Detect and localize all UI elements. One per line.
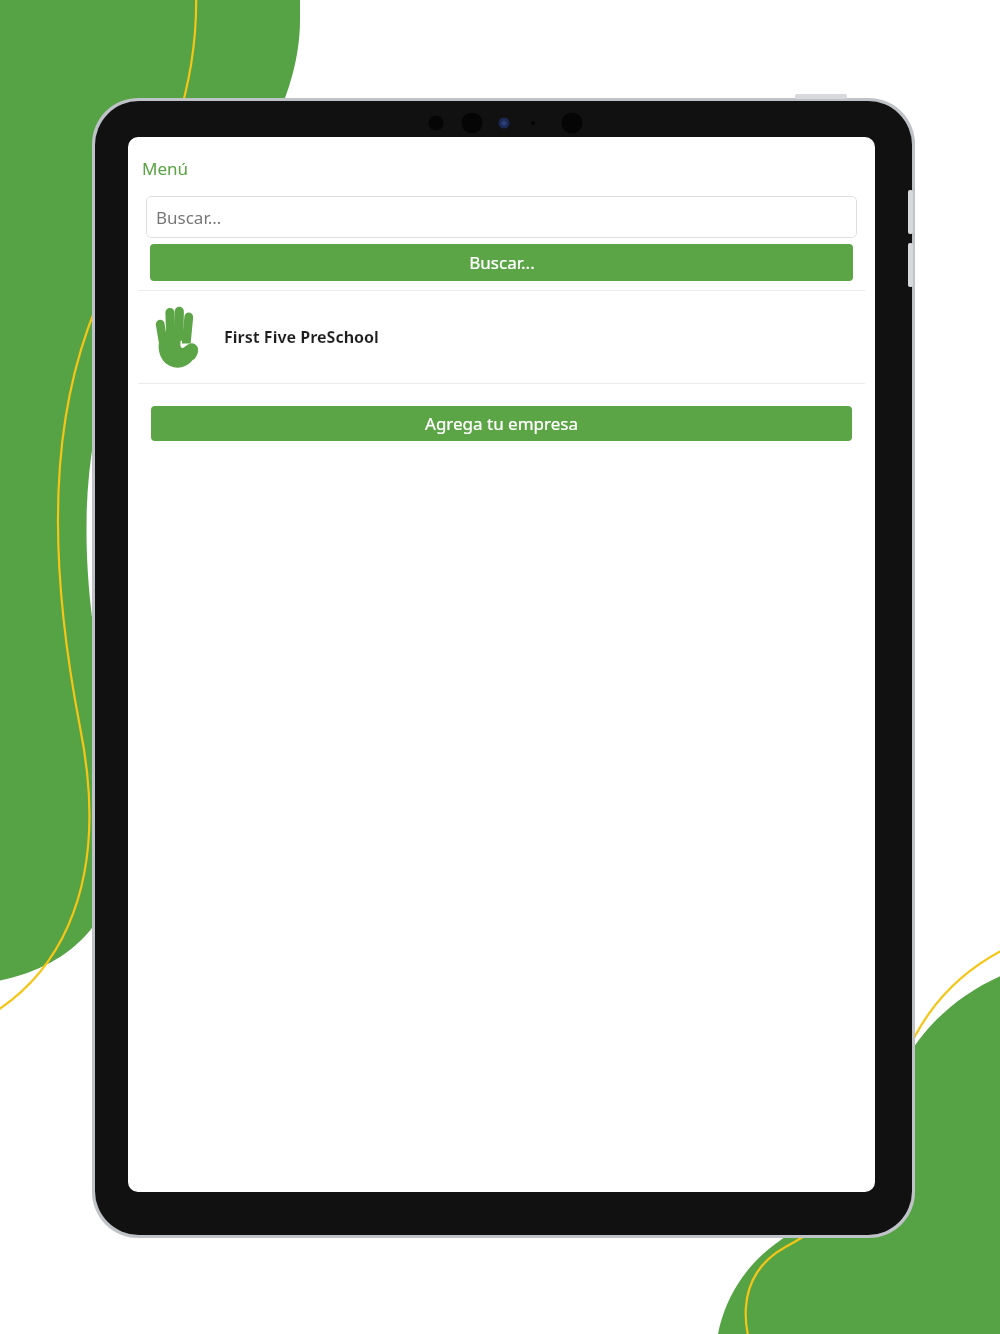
staticText: Menú — [142, 157, 189, 180]
button[interactable]: First Five PreSchool — [128, 291, 875, 383]
staticText: Buscar... — [469, 251, 535, 274]
staticText: Buscar... — [156, 206, 222, 229]
button[interactable]: Buscar... — [150, 244, 853, 281]
staticText: Agrega tu empresa — [425, 412, 578, 435]
button[interactable]: Menú — [140, 155, 191, 182]
button[interactable]: Buscar... — [146, 196, 857, 238]
staticText: First Five PreSchool — [224, 326, 379, 348]
button[interactable]: Agrega tu empresa — [151, 406, 852, 441]
